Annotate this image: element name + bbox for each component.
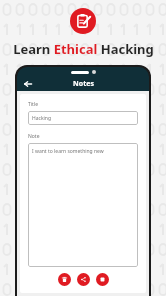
staticText: Hacking bbox=[32, 115, 138, 122]
button[interactable]: Learn Ethical Hacking logo bbox=[70, 8, 96, 34]
button[interactable]: Save bbox=[96, 273, 109, 286]
staticText: Learn Ethical Hacking bbox=[13, 40, 154, 58]
staticText: Note bbox=[28, 133, 138, 140]
button[interactable]: Hacking bbox=[28, 111, 138, 125]
button[interactable]: Delete bbox=[58, 273, 71, 286]
button[interactable]: Back bbox=[22, 78, 33, 89]
button[interactable]: I want to learn something new bbox=[28, 143, 138, 267]
staticText: I want to learn something new bbox=[32, 148, 138, 155]
staticText: Notes bbox=[73, 79, 94, 89]
button[interactable]: Share bbox=[77, 273, 90, 286]
staticText: Title bbox=[28, 101, 138, 108]
